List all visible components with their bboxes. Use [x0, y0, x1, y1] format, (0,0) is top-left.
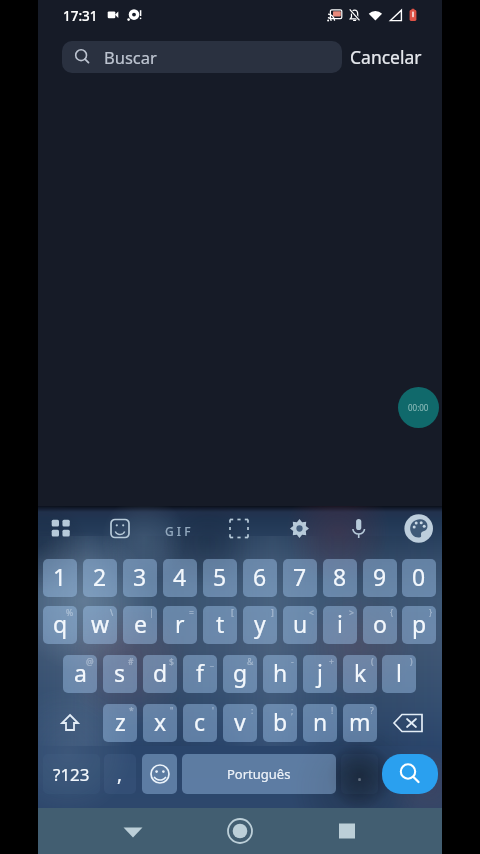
button[interactable]: p — [402, 606, 436, 644]
staticText: 17:31 — [63, 7, 98, 25]
button[interactable]: Shift — [43, 704, 97, 742]
button[interactable]: h — [263, 655, 297, 693]
staticText: 9 — [373, 561, 387, 592]
button[interactable]: m — [343, 704, 377, 742]
staticText: n — [313, 706, 328, 737]
button[interactable]: k — [343, 655, 377, 693]
button[interactable]: Voice input — [339, 506, 381, 552]
button[interactable]: z — [103, 704, 137, 742]
button[interactable]: Keyboard layouts — [40, 506, 82, 552]
button[interactable]: f — [183, 655, 217, 693]
staticText: > — [349, 607, 354, 619]
staticText: $ — [169, 656, 174, 668]
button[interactable]: Back — [113, 809, 153, 853]
button[interactable]: Backspace — [382, 704, 436, 742]
staticText: ? — [370, 705, 374, 717]
button[interactable]: Emoji — [142, 754, 177, 794]
button[interactable]: g — [223, 655, 257, 693]
button[interactable]: 1 — [43, 559, 77, 597]
button[interactable]: Home — [220, 809, 260, 853]
staticText: z — [115, 706, 126, 737]
staticText: 5 — [213, 561, 227, 592]
button[interactable]: n — [303, 704, 337, 742]
button[interactable]: . — [341, 754, 378, 794]
staticText: ; — [291, 705, 294, 717]
staticText: d — [153, 657, 168, 688]
staticText: p — [412, 608, 427, 639]
staticText: @ — [86, 656, 94, 668]
staticText: 8 — [333, 561, 347, 592]
button[interactable]: ?123 — [43, 754, 100, 794]
button[interactable]: Buscar — [62, 41, 342, 73]
button[interactable]: r — [163, 606, 197, 644]
button[interactable]: u — [283, 606, 317, 644]
staticText: Cancelar — [350, 45, 422, 69]
staticText: & — [247, 656, 254, 668]
staticText: : — [251, 705, 254, 717]
button[interactable]: t — [203, 606, 237, 644]
staticText: r — [175, 608, 185, 639]
button[interactable]: x — [143, 704, 177, 742]
staticText: 7 — [293, 561, 307, 592]
button[interactable]: Search — [382, 754, 438, 794]
button[interactable]: a — [63, 655, 97, 693]
staticText: Português — [227, 765, 291, 783]
button[interactable]: 4 — [163, 559, 197, 597]
staticText: < — [309, 607, 314, 619]
button[interactable]: Themes — [399, 506, 441, 552]
staticText: * — [129, 705, 134, 717]
button[interactable]: G I F — [153, 506, 203, 556]
button[interactable]: 00:00 — [398, 387, 439, 428]
staticText: 2 — [93, 561, 107, 592]
button[interactable]: e — [123, 606, 157, 644]
button[interactable]: , — [104, 754, 136, 794]
staticText: s — [114, 657, 126, 688]
staticText: g — [233, 657, 248, 688]
button[interactable]: b — [263, 704, 297, 742]
button[interactable]: Cancelar — [348, 41, 424, 73]
button[interactable]: l — [382, 655, 416, 693]
staticText: f — [196, 657, 204, 688]
button[interactable]: i — [323, 606, 357, 644]
button[interactable]: w — [83, 606, 117, 644]
button[interactable]: Português — [182, 754, 336, 794]
staticText: \ — [110, 607, 114, 619]
staticText: j — [317, 657, 323, 688]
button[interactable]: 0 — [402, 559, 436, 597]
staticText: u — [293, 608, 308, 639]
staticText: ) — [410, 656, 413, 668]
staticText: 4 — [173, 561, 187, 592]
staticText: k — [354, 657, 367, 688]
staticText: c — [194, 706, 206, 737]
button[interactable]: c — [183, 704, 217, 742]
button[interactable]: 5 — [203, 559, 237, 597]
staticText: 1 — [53, 561, 67, 592]
button[interactable]: 6 — [243, 559, 277, 597]
staticText: . — [357, 761, 363, 787]
button[interactable]: 7 — [283, 559, 317, 597]
button[interactable]: Recent apps — [327, 809, 367, 853]
button[interactable]: j — [303, 655, 337, 693]
button[interactable]: q — [43, 606, 77, 644]
button[interactable]: s — [103, 655, 137, 693]
staticText: a — [74, 657, 87, 688]
staticText: l — [396, 657, 402, 688]
button[interactable]: 9 — [363, 559, 397, 597]
button[interactable]: v — [223, 704, 257, 742]
staticText: w — [91, 608, 110, 639]
staticText: b — [273, 706, 288, 737]
staticText: [ — [231, 607, 234, 619]
button[interactable]: y — [243, 606, 277, 644]
button[interactable]: Settings — [279, 506, 321, 552]
button[interactable]: 2 — [83, 559, 117, 597]
staticText: ] — [271, 607, 274, 619]
staticText: 6 — [253, 561, 267, 592]
button[interactable]: d — [143, 655, 177, 693]
button[interactable]: Stickers — [100, 506, 142, 552]
staticText: Buscar — [104, 46, 157, 68]
button[interactable]: o — [363, 606, 397, 644]
button[interactable]: Clipboard — [219, 506, 261, 552]
button[interactable]: 3 — [123, 559, 157, 597]
button[interactable]: 8 — [323, 559, 357, 597]
staticText: m — [349, 706, 371, 737]
